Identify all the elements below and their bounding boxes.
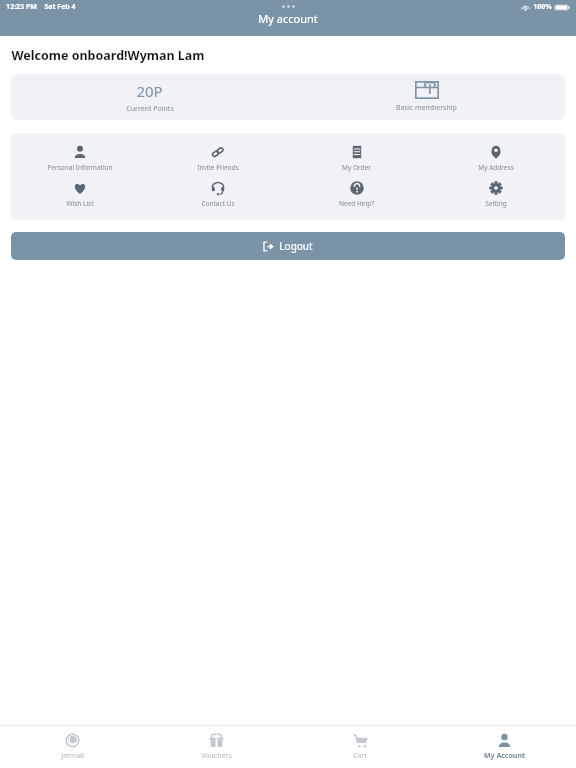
staticText: My Order: [342, 163, 371, 172]
staticText: Invite Friends: [197, 163, 239, 172]
staticText: Contact Us: [201, 199, 235, 208]
staticText: Wish List: [66, 199, 94, 208]
staticText: Setting: [485, 199, 507, 208]
button[interactable]: Wish List: [11, 176, 149, 213]
button[interactable]: Cart: [288, 726, 432, 768]
staticText: Cart: [353, 751, 367, 761]
staticText: Jetmall: [61, 751, 84, 761]
staticText: 100%: [533, 2, 552, 12]
button[interactable]: Setting: [426, 176, 565, 213]
button[interactable]: Contact Us: [149, 176, 287, 213]
button[interactable]: My Address: [426, 140, 565, 176]
staticText: My Account: [484, 751, 525, 761]
other: Basic membership: [415, 81, 439, 99]
button[interactable]: My Account: [432, 726, 576, 768]
staticText: Sat Feb 4: [44, 2, 76, 12]
staticText: Welcome onboard!Wyman Lam: [11, 47, 205, 64]
staticText: My Address: [478, 163, 514, 172]
staticText: 20P: [136, 81, 163, 101]
button[interactable]: Logout: [11, 232, 565, 260]
staticText: Personal Information: [47, 163, 113, 172]
staticText: Current Points: [126, 104, 174, 114]
button[interactable]: Basic membership: [288, 74, 565, 120]
button[interactable]: My Order: [287, 140, 426, 176]
button[interactable]: Vouchers: [144, 726, 288, 768]
button[interactable]: Jetmall: [0, 726, 144, 768]
button[interactable]: 20P: [11, 74, 288, 120]
staticText: Logout: [279, 239, 313, 253]
staticText: Need Help?: [339, 199, 374, 208]
staticText: My account: [258, 11, 318, 26]
button[interactable]: Personal Information: [11, 140, 149, 176]
button[interactable]: Invite Friends: [149, 140, 287, 176]
staticText: Basic membership: [396, 103, 457, 113]
staticText: Vouchers: [201, 751, 232, 761]
button[interactable]: Need Help?: [287, 176, 426, 213]
staticText: 12:23 PM: [6, 2, 37, 12]
